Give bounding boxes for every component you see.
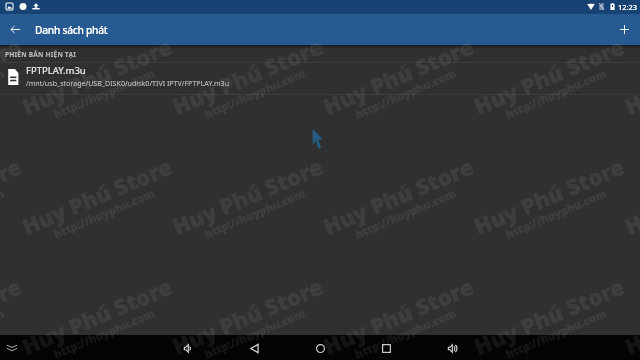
staticText: 12:23: [618, 2, 637, 12]
button[interactable]: Hide navigation bar: [0, 336, 24, 360]
staticText: FPTPLAY.m3u: [26, 64, 86, 77]
button[interactable]: Volume down: [177, 337, 199, 359]
button[interactable]: Back: [243, 337, 265, 359]
staticText: Danh sách phát: [35, 23, 108, 37]
staticText: PHIÊN BẢN HIỆN TẠI: [5, 50, 76, 59]
button[interactable]: Back: [0, 14, 31, 45]
button[interactable]: Volume up: [441, 337, 463, 359]
button[interactable]: FPTPLAY.m3u: [0, 63, 640, 94]
staticText: /mnt/usb_storage/USB_DISK0/udisk0/TIVI I…: [26, 78, 230, 88]
button[interactable]: Recents: [375, 337, 397, 359]
button[interactable]: Home: [309, 337, 331, 359]
button[interactable]: Add playlist: [609, 14, 640, 45]
